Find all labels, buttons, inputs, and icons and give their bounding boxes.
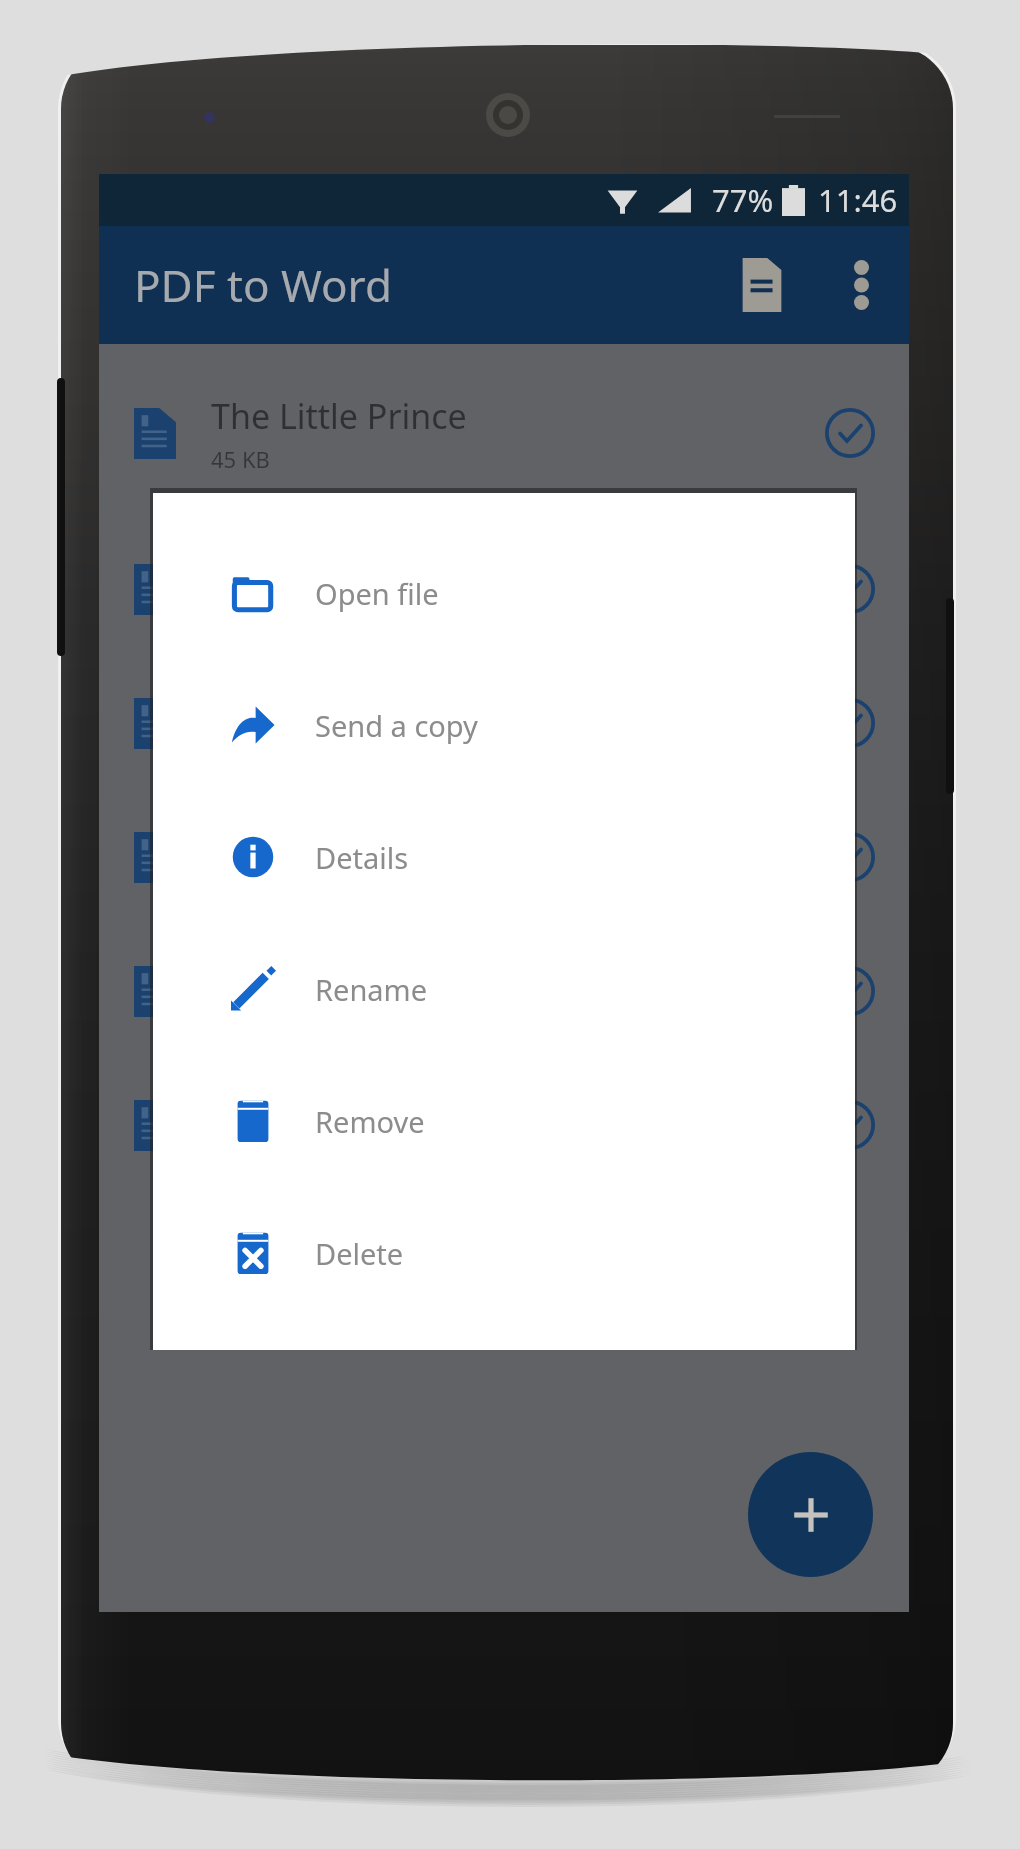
- staticText: 744 KB: [211, 1136, 283, 1166]
- button[interactable]: Convert: [820, 827, 880, 887]
- button[interactable]: Send a copy: [153, 659, 855, 791]
- staticText: Remove: [315, 1102, 425, 1141]
- button[interactable]: Anna Karenina: [99, 522, 909, 656]
- staticText: 432 KB: [211, 734, 283, 764]
- button[interactable]: Les Miserables: [99, 656, 909, 790]
- button[interactable]: Moby Dick: [99, 924, 909, 1058]
- button[interactable]: More options: [824, 248, 898, 322]
- button[interactable]: The Little Prince: [99, 344, 909, 522]
- staticText: Jane Eyre: [211, 817, 358, 863]
- button[interactable]: Open file: [153, 527, 855, 659]
- button[interactable]: Add file: [748, 1452, 873, 1577]
- staticText: Rename: [315, 970, 428, 1009]
- button[interactable]: Jane Eyre: [99, 790, 909, 924]
- staticText: War and Peace: [211, 1085, 449, 1131]
- staticText: 355 KB: [211, 1002, 283, 1032]
- staticText: 11:46: [818, 179, 898, 221]
- staticText: 45 KB: [211, 444, 270, 474]
- staticText: Details: [315, 838, 409, 877]
- button[interactable]: Rename: [153, 923, 855, 1055]
- button[interactable]: Details: [153, 791, 855, 923]
- staticText: Send a copy: [315, 706, 478, 745]
- button[interactable]: Remove: [153, 1055, 855, 1187]
- button[interactable]: Convert: [820, 559, 880, 619]
- staticText: The Little Prince: [211, 393, 467, 439]
- staticText: 268 KB: [211, 600, 283, 630]
- button[interactable]: Convert: [820, 1095, 880, 1155]
- button[interactable]: War and Peace: [99, 1058, 909, 1192]
- staticText: Moby Dick: [211, 951, 377, 997]
- staticText: Anna Karenina: [211, 549, 446, 595]
- staticText: Open file: [315, 574, 439, 613]
- staticText: Les Miserables: [211, 683, 446, 729]
- button[interactable]: Delete: [153, 1187, 855, 1319]
- button[interactable]: My documents: [725, 248, 799, 322]
- staticText: Delete: [315, 1234, 404, 1273]
- button[interactable]: Convert: [820, 693, 880, 753]
- button[interactable]: Convert: [820, 403, 880, 463]
- staticText: 77%: [712, 179, 774, 221]
- button[interactable]: Convert: [820, 961, 880, 1021]
- staticText: PDF to Word: [134, 255, 392, 315]
- staticText: 197 KB: [211, 868, 283, 898]
